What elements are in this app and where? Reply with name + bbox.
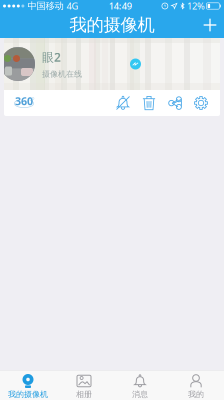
staticText: 4G: [66, 0, 78, 12]
button[interactable]: Settings: [188, 92, 214, 114]
staticText: 消息: [132, 389, 148, 399]
button[interactable]: Share: [162, 92, 188, 114]
staticText: 12%: [187, 0, 205, 12]
staticText: 中国移动: [27, 0, 63, 12]
button[interactable]: 消息: [112, 370, 168, 400]
staticText: 14:49: [109, 0, 132, 12]
button[interactable]: Mute notifications: [110, 92, 136, 114]
staticText: 摄像机在线: [42, 69, 82, 79]
button[interactable]: Add camera: [196, 12, 224, 38]
staticText: 我的摄像机: [8, 389, 48, 399]
button[interactable]: 我的摄像机: [0, 370, 56, 400]
staticText: 我的: [188, 389, 204, 399]
button[interactable]: Delete: [136, 92, 162, 114]
button[interactable]: 我的: [168, 370, 224, 400]
button[interactable]: 相册: [56, 370, 112, 400]
staticText: 眼2: [42, 49, 61, 65]
staticText: 我的摄像机: [69, 14, 154, 36]
staticText: 相册: [76, 389, 92, 399]
staticText: 360: [15, 94, 33, 108]
